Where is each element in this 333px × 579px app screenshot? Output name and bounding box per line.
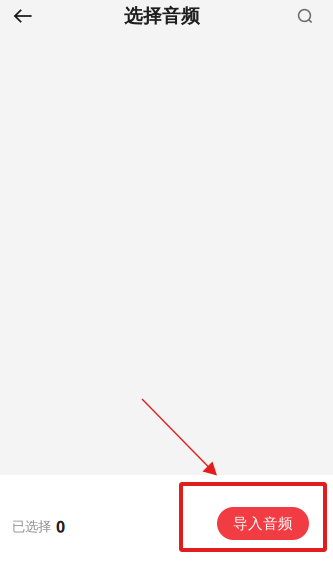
button[interactable]: 导入音频 — [217, 507, 309, 540]
button[interactable]: Search — [284, 0, 326, 32]
staticText: 0 — [56, 516, 65, 537]
staticText: 导入音频 — [233, 514, 293, 532]
staticText: 选择音频 — [124, 4, 200, 27]
staticText: 已选择 — [12, 518, 51, 535]
button[interactable]: Back — [0, 0, 46, 32]
